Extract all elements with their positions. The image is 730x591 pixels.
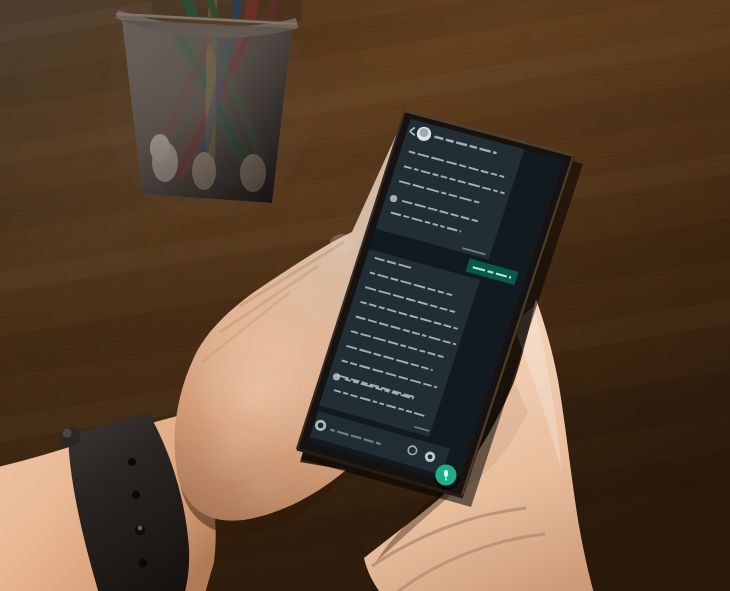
button[interactable]: Received message list <box>340 258 470 438</box>
button[interactable]: Type a message <box>304 424 434 458</box>
button[interactable]: Back <box>404 114 426 136</box>
button[interactable]: Received message <box>396 126 526 246</box>
button[interactable]: Sent message <box>468 258 522 282</box>
button[interactable]: Record voice message <box>434 463 458 487</box>
button[interactable]: Camera <box>418 440 438 460</box>
button[interactable]: Contact profile <box>416 118 438 140</box>
button[interactable]: Attach <box>400 436 420 456</box>
